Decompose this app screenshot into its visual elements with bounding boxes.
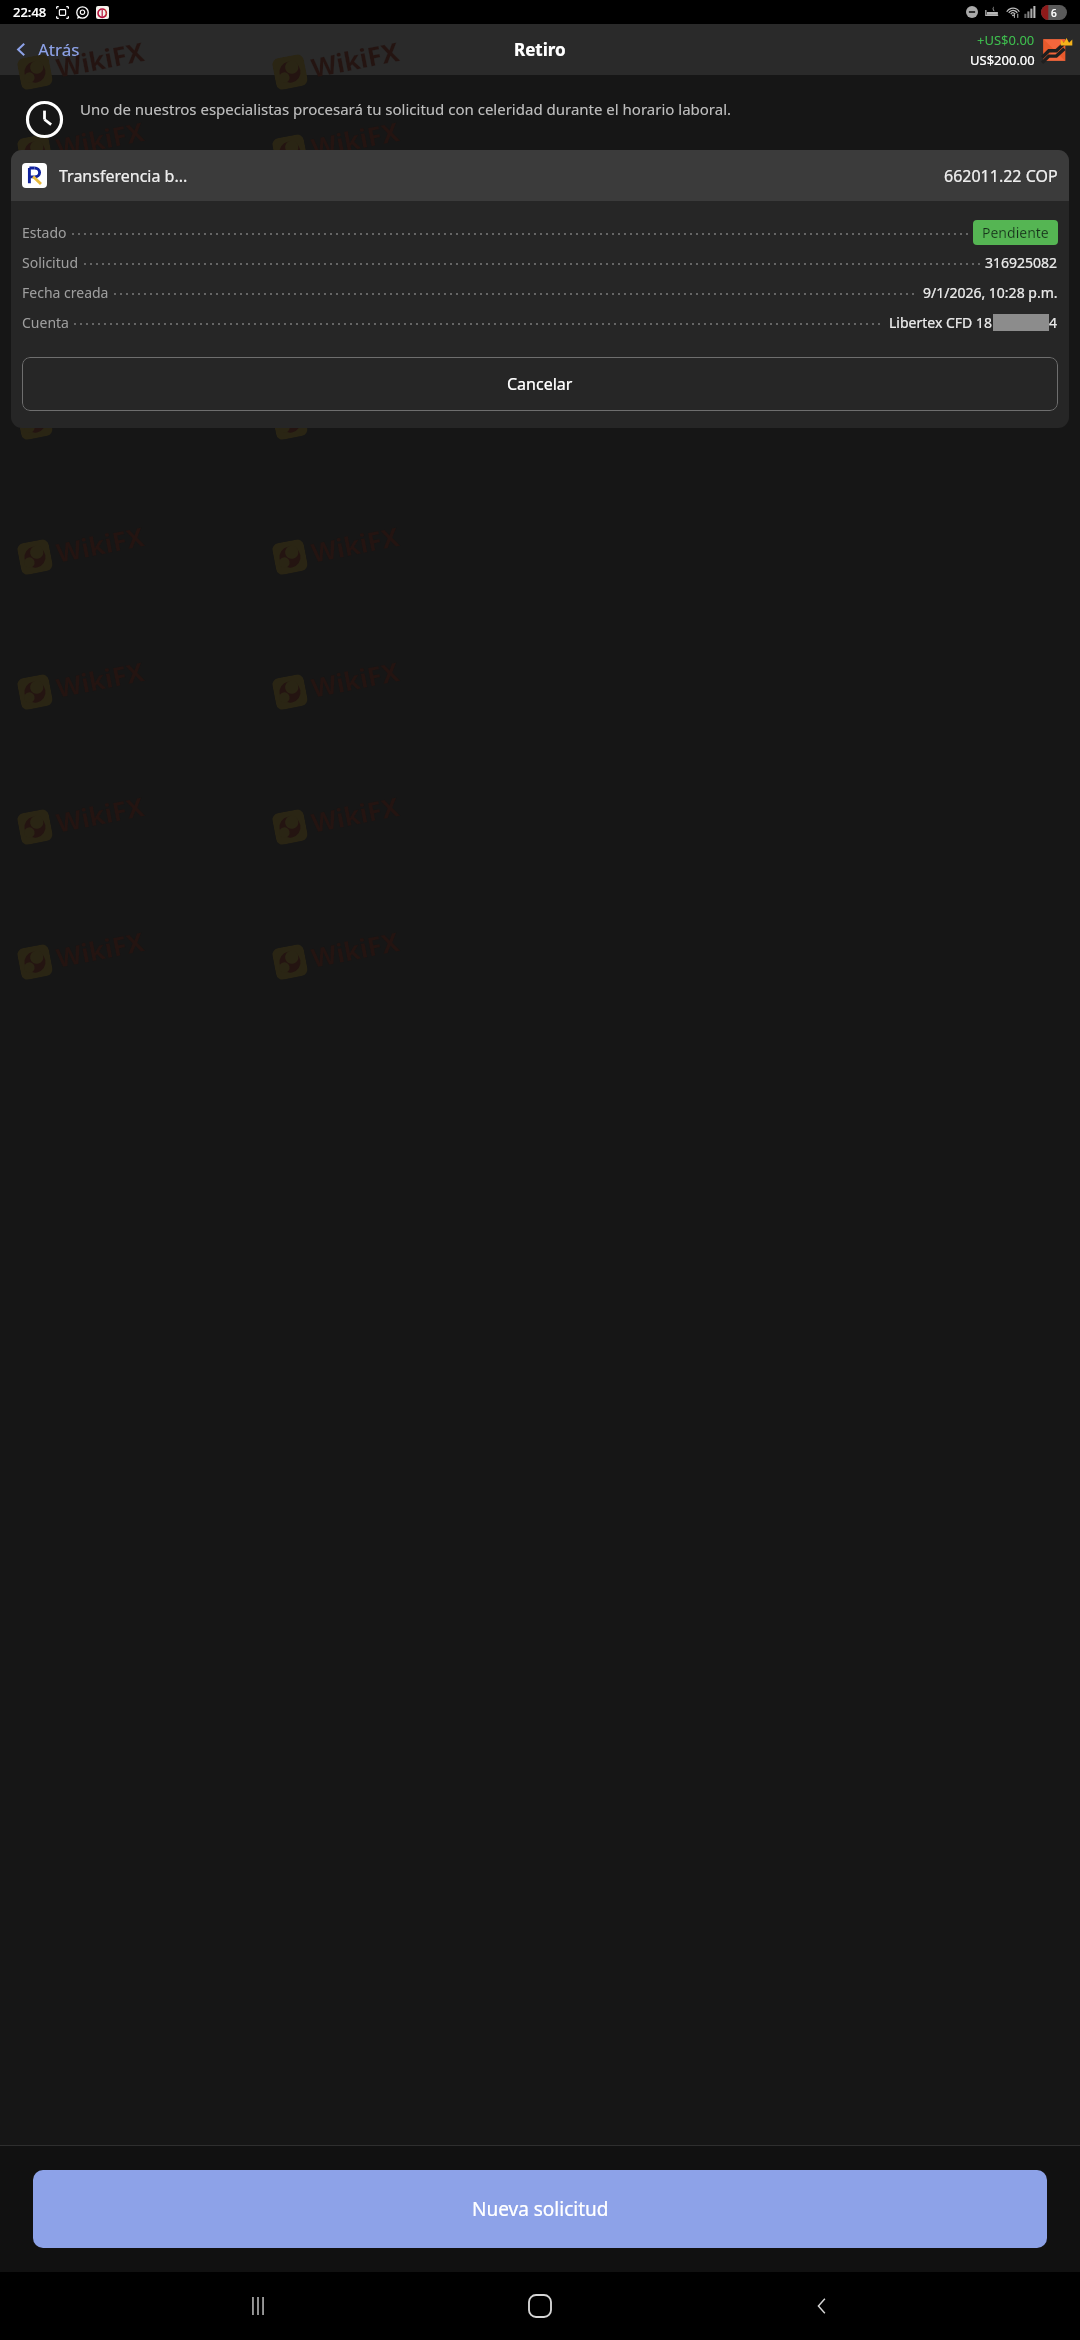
staticText: Retiro xyxy=(514,38,566,61)
staticText: WikiFX xyxy=(53,923,147,974)
staticText: Libertex CFD 18 xyxy=(889,313,992,332)
staticText: WikiFX xyxy=(308,518,402,569)
staticText: Uno de nuestros especialistas procesará … xyxy=(80,99,732,119)
staticText: Cancelar xyxy=(507,373,573,395)
staticText: Pendiente xyxy=(982,223,1049,242)
button[interactable]: +US$0.00 xyxy=(970,31,1074,69)
staticText: 22:48 xyxy=(13,3,47,21)
staticText: WikiFX xyxy=(308,923,402,974)
staticText: 6 xyxy=(1051,6,1057,20)
staticText: 4 xyxy=(1049,313,1058,332)
staticText: WikiFX xyxy=(308,383,402,434)
other: Cuenta xyxy=(1040,33,1074,67)
staticText: Solicitud xyxy=(22,253,79,272)
staticText: Nueva solicitud xyxy=(472,2196,609,2222)
staticText: 316925082 xyxy=(985,253,1058,272)
staticText: Atrás xyxy=(38,38,80,61)
staticText: Transferencia b... xyxy=(59,165,188,187)
staticText: +US$0.00 xyxy=(977,31,1035,49)
staticText: Fecha creada xyxy=(22,283,109,302)
staticText: WikiFX xyxy=(53,113,147,164)
button[interactable]: Home xyxy=(516,2282,564,2330)
staticText: WikiFX xyxy=(53,788,147,839)
staticText: WikiFX xyxy=(308,788,402,839)
staticText: Estado xyxy=(22,223,67,242)
button[interactable]: Recents xyxy=(234,2282,282,2330)
staticText: WikiFX xyxy=(53,248,147,299)
button[interactable]: Back xyxy=(798,2282,846,2330)
staticText: WikiFX xyxy=(53,33,147,84)
button[interactable]: Nueva solicitud xyxy=(33,2170,1047,2248)
staticText: WikiFX xyxy=(53,383,147,434)
staticText: WikiFX xyxy=(308,113,402,164)
button[interactable]: Atrás xyxy=(0,24,90,75)
staticText: 9/1/2026, 10:28 p.m. xyxy=(923,283,1058,302)
staticText: 662011.22 COP xyxy=(944,165,1058,187)
staticText: WikiFX xyxy=(308,33,402,84)
button[interactable]: Cancelar xyxy=(22,357,1058,411)
staticText: WikiFX xyxy=(308,248,402,299)
staticText: Cuenta xyxy=(22,313,69,332)
staticText: WikiFX xyxy=(53,518,147,569)
staticText: US$200.00 xyxy=(970,51,1035,69)
staticText: WikiFX xyxy=(308,653,402,704)
staticText: WikiFX xyxy=(53,653,147,704)
